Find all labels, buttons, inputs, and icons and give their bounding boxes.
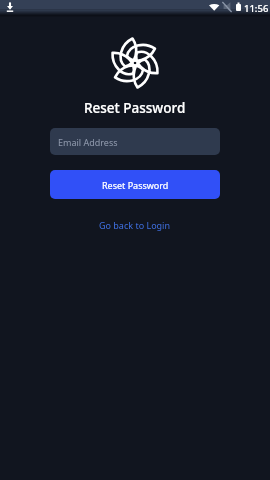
button[interactable]: Email Address — [50, 128, 220, 155]
staticText: Email Address — [58, 136, 118, 148]
staticText: Reset Password — [102, 179, 169, 191]
staticText: Go back to Login — [99, 219, 171, 231]
button[interactable]: Go back to Login — [93, 215, 177, 235]
button[interactable]: Reset Password — [50, 170, 220, 199]
staticText: 11:56 — [244, 2, 269, 15]
staticText: Reset Password — [84, 99, 186, 117]
